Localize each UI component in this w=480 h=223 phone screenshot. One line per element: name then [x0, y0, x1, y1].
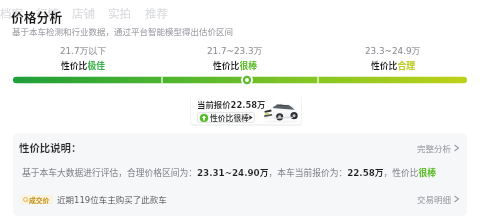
staticText: 性价比合理 — [371, 59, 415, 72]
staticText: 性价比很棒 — [210, 112, 249, 123]
staticText: 价格分析 — [11, 7, 63, 26]
staticText: 性价比很棒 — [213, 59, 257, 72]
button[interactable]: 完整分析 — [417, 142, 459, 154]
button[interactable]: 店铺 — [72, 5, 95, 22]
button[interactable]: 成交价 — [21, 190, 459, 208]
staticText: 基于本车检测和行业数据，通过平台智能模型得出估价区间 — [12, 25, 234, 37]
staticText: 近期119位车主购买了此款车 — [57, 193, 167, 205]
staticText: 基于本车大数据进行评估，合理价格区间为：23.31~24.90万，本车当前报价为… — [22, 166, 437, 179]
staticText: 性价比极佳 — [61, 59, 105, 72]
staticText: 完整分析 — [417, 142, 452, 154]
button[interactable]: 推荐 — [145, 5, 168, 22]
staticText: 交易明细 — [417, 193, 452, 205]
staticText: 23.3~24.9万 — [365, 46, 421, 57]
button[interactable]: 当前报价22.58万 — [191, 95, 301, 124]
staticText: 推荐 — [145, 5, 168, 22]
staticText: 性价比说明： — [19, 140, 82, 155]
staticText: 店铺 — [72, 5, 95, 22]
staticText: 档案 — [0, 5, 23, 22]
staticText: 当前报价22.58万 — [197, 98, 266, 110]
staticText: 21.7万以下 — [60, 46, 106, 57]
button[interactable]: 行情 — [36, 5, 59, 22]
button[interactable]: 档案 — [0, 5, 23, 22]
staticText: 实拍 — [108, 5, 131, 22]
button[interactable]: 实拍 — [108, 5, 131, 22]
staticText: 行情 — [36, 5, 59, 22]
staticText: 21.7~23.3万 — [207, 46, 263, 57]
staticText: 成交价 — [29, 195, 50, 204]
